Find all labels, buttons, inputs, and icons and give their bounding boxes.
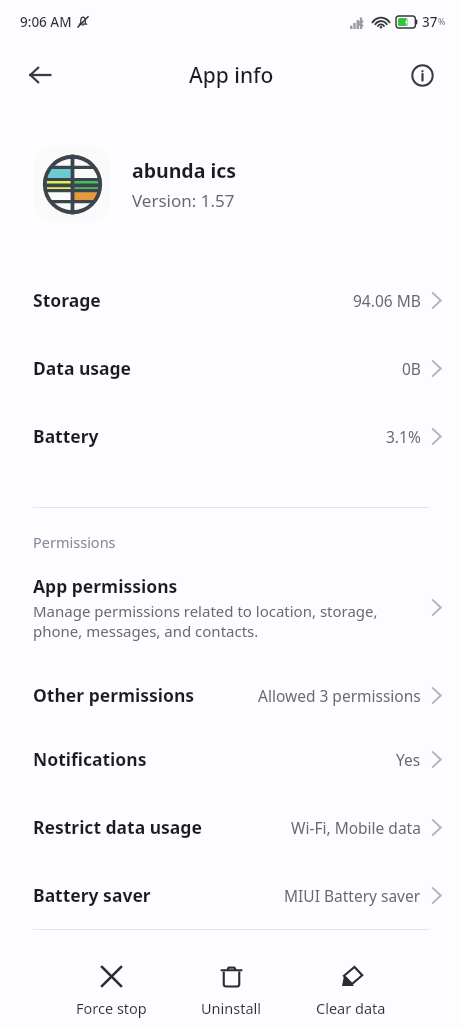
staticText: App permissions <box>33 574 178 598</box>
button[interactable]: Force stop <box>62 958 161 1024</box>
button[interactable]: Restrict data usage <box>0 793 462 861</box>
staticText: 37 <box>422 13 438 31</box>
staticText: Uninstall <box>201 998 262 1018</box>
staticText: Restrict data usage <box>33 815 202 839</box>
staticText: Wi-Fi, Mobile data <box>291 817 421 838</box>
staticText: Clear data <box>316 998 386 1018</box>
button[interactable]: Storage <box>0 266 462 334</box>
staticText: Allowed 3 permissions <box>258 685 421 706</box>
staticText: MIUI Battery saver <box>284 885 421 906</box>
staticText: 94.06 MB <box>353 290 421 311</box>
staticText: Manage permissions related to location, … <box>33 601 417 641</box>
staticText: 9:06 AM <box>20 13 72 31</box>
button[interactable]: App permissions <box>0 562 462 653</box>
button[interactable]: Battery saver <box>0 861 462 929</box>
staticText: Yes <box>396 749 421 770</box>
button[interactable]: Clear data <box>302 958 400 1024</box>
staticText: Force stop <box>76 998 147 1018</box>
staticText: Notifications <box>33 747 147 771</box>
staticText: Data usage <box>33 356 132 380</box>
button[interactable]: abunda ics <box>0 146 462 222</box>
button[interactable]: Back <box>18 53 62 97</box>
staticText: abunda ics <box>132 157 237 184</box>
button[interactable]: Battery <box>0 402 462 470</box>
staticText: Battery <box>33 424 99 448</box>
button[interactable]: About <box>400 53 444 97</box>
staticText: App info <box>189 61 274 90</box>
button[interactable]: Other permissions <box>0 665 462 725</box>
staticText: 0B <box>402 358 421 379</box>
staticText: 3.1% <box>386 426 421 447</box>
button[interactable]: Notifications <box>0 725 462 793</box>
staticText: Storage <box>33 288 101 312</box>
staticText: Battery saver <box>33 883 151 907</box>
staticText: Permissions <box>33 532 116 552</box>
button[interactable]: Data usage <box>0 334 462 402</box>
staticText: Other permissions <box>33 683 195 707</box>
button[interactable]: Uninstall <box>187 958 276 1024</box>
staticText: Version: 1.57 <box>132 189 235 212</box>
staticText: % <box>438 16 446 28</box>
